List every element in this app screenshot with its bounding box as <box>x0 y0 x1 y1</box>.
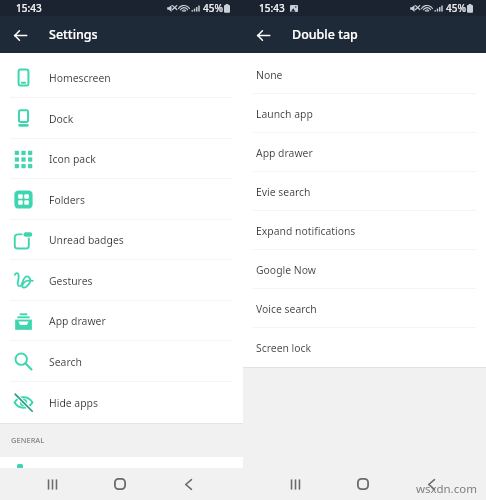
staticText: Settings <box>49 26 98 43</box>
button[interactable]: Home <box>102 468 138 500</box>
button[interactable]: Back <box>413 468 449 500</box>
staticText: Expand notifications <box>256 224 356 238</box>
staticText: Icon pack <box>49 152 96 166</box>
staticText: 45% <box>446 1 466 15</box>
button[interactable]: App drawer <box>0 301 243 341</box>
button[interactable]: Folders <box>0 179 243 220</box>
button[interactable]: Back <box>8 23 32 47</box>
button[interactable]: Unread badges <box>0 220 243 260</box>
button[interactable]: None <box>243 55 486 94</box>
button[interactable]: Hide apps <box>0 382 243 423</box>
staticText: Dock <box>49 112 74 126</box>
staticText: Google Now <box>256 263 316 277</box>
staticText: Folders <box>49 193 85 207</box>
staticText: Voice search <box>256 302 317 316</box>
staticText: 15:43 <box>259 1 285 15</box>
button[interactable]: Google Now <box>243 250 486 289</box>
button[interactable]: Homescreen <box>0 57 243 98</box>
button[interactable]: Screen lock <box>243 328 486 367</box>
button[interactable]: Launch app <box>243 94 486 133</box>
button[interactable]: Voice search <box>243 289 486 328</box>
staticText: Hide apps <box>49 396 98 410</box>
staticText: Gestures <box>49 274 93 288</box>
button[interactable]: Recent apps <box>277 468 313 500</box>
staticText: None <box>256 68 283 82</box>
button[interactable]: Search <box>0 341 243 382</box>
staticText: Evie search <box>256 185 311 199</box>
button[interactable]: Recent apps <box>34 468 70 500</box>
button[interactable]: Expand notifications <box>243 211 486 250</box>
staticText: Launch app <box>256 107 313 121</box>
button[interactable]: App drawer <box>243 133 486 172</box>
staticText: 15:43 <box>16 1 42 15</box>
staticText: Search <box>49 355 82 369</box>
staticText: Screen lock <box>256 341 312 355</box>
staticText: App drawer <box>256 146 313 160</box>
staticText: wsxdn.com <box>416 481 477 497</box>
button[interactable]: Dock <box>0 98 243 139</box>
button[interactable]: Gestures <box>0 260 243 301</box>
staticText: App drawer <box>49 314 106 328</box>
button[interactable]: Evie search <box>243 172 486 211</box>
staticText: Unread badges <box>49 233 124 247</box>
button[interactable]: Back <box>251 23 275 47</box>
staticText: Homescreen <box>49 71 111 85</box>
staticText: 45% <box>203 1 223 15</box>
staticText: GENERAL <box>11 435 45 445</box>
button[interactable]: Home <box>345 468 381 500</box>
staticText: Double tap <box>292 26 358 43</box>
button[interactable]: Back <box>170 468 206 500</box>
button[interactable]: Icon pack <box>0 139 243 179</box>
